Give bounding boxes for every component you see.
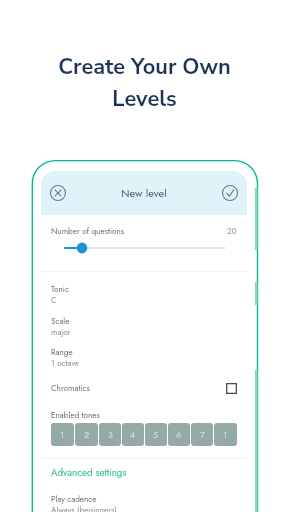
button[interactable]: Chromatics [41, 380, 247, 396]
staticText: 1 [223, 428, 228, 441]
button[interactable]: 1 [214, 423, 237, 446]
button[interactable]: 6 [168, 423, 190, 446]
staticText: Range [51, 346, 73, 358]
button[interactable]: Close [47, 182, 69, 204]
button[interactable]: Tonic [41, 283, 247, 306]
staticText: Chromatics [51, 382, 90, 394]
staticText: 1 [60, 428, 65, 441]
staticText: 6 [176, 428, 182, 441]
button[interactable]: 7 [191, 423, 213, 446]
staticText: Tonic [51, 283, 69, 295]
button[interactable]: 5 [145, 423, 167, 446]
button[interactable]: 4 [122, 423, 144, 446]
staticText: 4 [130, 428, 136, 441]
staticText: 20 [227, 225, 237, 237]
staticText: 5 [153, 428, 159, 441]
button[interactable]: Number of questions [41, 224, 247, 238]
button[interactable]: 2 [75, 423, 98, 446]
button[interactable]: 1 [51, 423, 74, 446]
staticText: Levels [112, 84, 177, 114]
button[interactable]: 3 [99, 423, 121, 446]
staticText: Play cadence [51, 493, 97, 505]
staticText: Advanced settings [51, 466, 127, 480]
staticText: Number of questions [51, 225, 125, 237]
button[interactable]: Scale [41, 315, 247, 338]
staticText: Enabled tones [51, 409, 100, 421]
staticText: Always (beginners) [51, 504, 117, 512]
button[interactable]: Confirm [219, 182, 241, 204]
staticText: 7 [200, 428, 205, 441]
staticText: 3 [108, 428, 113, 441]
staticText: Scale [51, 315, 70, 327]
staticText: New level [121, 185, 167, 201]
staticText: 1 octave [51, 357, 80, 369]
button[interactable]: Range [41, 346, 247, 369]
staticText: C [51, 294, 57, 306]
staticText: 2 [84, 428, 90, 441]
button[interactable]: Play cadence [41, 493, 247, 512]
button[interactable]: Advanced settings [41, 466, 247, 484]
staticText: Create Your Own [58, 52, 231, 82]
staticText: major [51, 326, 71, 338]
